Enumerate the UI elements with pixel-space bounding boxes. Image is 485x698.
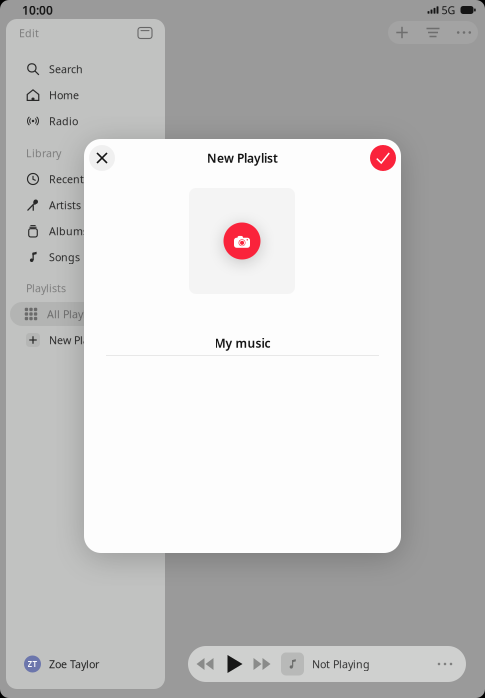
button[interactable]: Artists	[6, 192, 165, 218]
button[interactable]: Albums	[6, 218, 165, 244]
button[interactable]: More options	[426, 649, 464, 679]
button[interactable]: Radio	[6, 108, 165, 134]
staticText: ZT	[27, 659, 37, 669]
staticText: Radio	[49, 114, 78, 128]
button[interactable]: Play	[220, 649, 250, 679]
staticText: Recently Added	[49, 172, 129, 186]
staticText: Not Playing	[312, 657, 370, 671]
staticText: Songs	[49, 250, 80, 264]
staticText: Search	[49, 62, 83, 76]
staticText: New Playlist	[207, 150, 278, 166]
staticText: Library	[26, 146, 61, 160]
button[interactable]: Songs	[6, 244, 165, 270]
button[interactable]: Hide sidebar	[134, 22, 156, 44]
button[interactable]: Edit	[19, 22, 63, 44]
button[interactable]: Close	[89, 145, 115, 171]
button[interactable]: Add	[387, 21, 417, 44]
staticText: All Playlists	[47, 307, 103, 321]
button[interactable]: Home	[6, 82, 165, 108]
button[interactable]: Search	[6, 56, 165, 82]
button[interactable]: Add artwork	[189, 188, 295, 294]
staticText: Playlists	[26, 281, 66, 295]
button[interactable]: Next	[247, 649, 277, 679]
staticText: 10:00	[22, 2, 53, 18]
button[interactable]: ZT	[6, 650, 165, 678]
staticText: Home	[49, 88, 79, 102]
button[interactable]: All Playlists	[10, 302, 161, 326]
button[interactable]: Recently Added	[6, 166, 165, 192]
button[interactable]: Done	[370, 145, 396, 171]
staticText: Artists	[49, 198, 81, 212]
staticText: Edit	[19, 26, 39, 40]
staticText: 5G	[441, 3, 455, 17]
staticText: Albums	[49, 224, 88, 238]
button[interactable]: Not Playing	[281, 649, 421, 679]
button[interactable]: New Playlist	[6, 327, 165, 353]
button[interactable]: Sort	[417, 21, 449, 44]
staticText: Zoe Taylor	[49, 657, 99, 671]
staticText: New Playlist	[49, 333, 109, 347]
button[interactable]: Previous	[190, 649, 220, 679]
staticText: My music	[214, 335, 270, 351]
button[interactable]: More	[449, 21, 479, 44]
